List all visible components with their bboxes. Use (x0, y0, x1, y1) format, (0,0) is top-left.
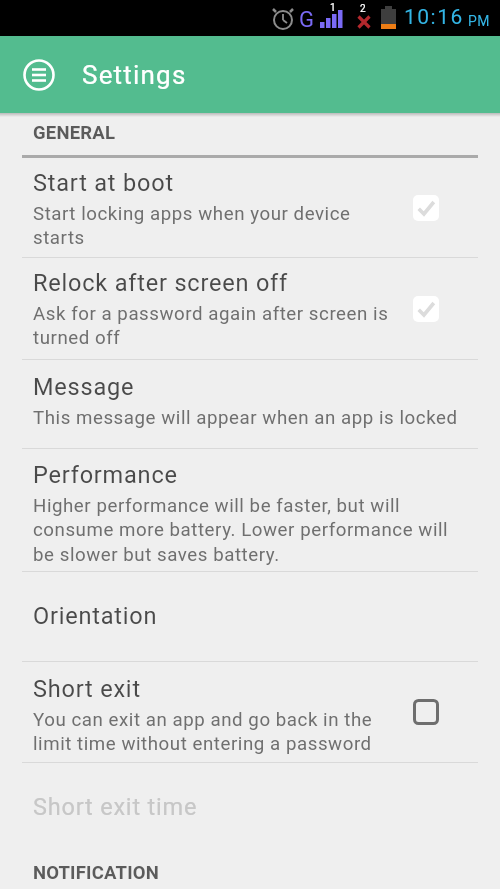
button[interactable]: Orientation (0, 572, 500, 661)
button[interactable] (23, 59, 55, 91)
staticText: Short exit time (33, 793, 198, 821)
staticText: Higher performance will be faster, but w… (33, 495, 449, 566)
staticText: GENERAL (33, 122, 116, 144)
button[interactable]: Message (0, 360, 500, 448)
staticText: Start locking apps when your device star… (33, 203, 351, 249)
button[interactable]: Performance (0, 449, 500, 571)
staticText: Orientation (33, 602, 158, 630)
staticText: 2 (360, 3, 366, 15)
staticText: NOTIFICATION (33, 862, 160, 884)
staticText: Message (33, 373, 135, 401)
staticText: This message will appear when an app is … (33, 407, 458, 429)
staticText: Performance (33, 461, 178, 489)
staticText: Settings (82, 60, 187, 90)
staticText: 10:16 (404, 5, 464, 30)
staticText: Short exit (33, 675, 141, 703)
staticText: Ask for a password again after screen is… (33, 303, 389, 349)
button[interactable]: Start at boot (0, 158, 500, 257)
staticText: G (299, 7, 314, 33)
staticText: PM (468, 13, 491, 29)
staticText: 1 (330, 2, 336, 14)
button[interactable]: Short exit time (0, 763, 500, 853)
staticText: Relock after screen off (33, 269, 289, 297)
button[interactable]: Short exit (0, 662, 500, 762)
button[interactable]: Relock after screen off (0, 258, 500, 359)
staticText: You can exit an app and go back in the l… (33, 709, 373, 755)
staticText: Start at boot (33, 169, 174, 197)
